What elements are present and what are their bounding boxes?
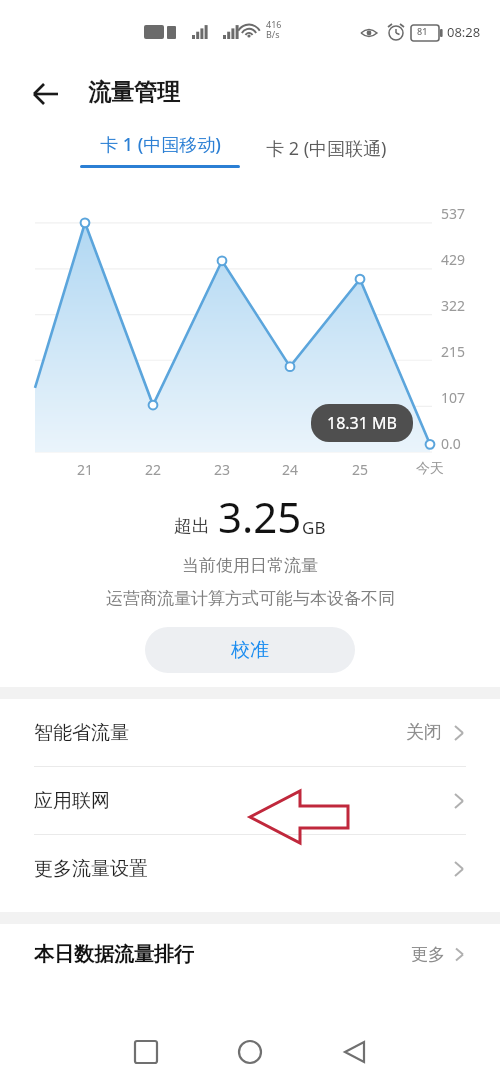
staticText: 08:28 bbox=[447, 23, 481, 41]
button[interactable]: 返回 bbox=[24, 72, 68, 116]
staticText: 107 bbox=[441, 388, 466, 407]
staticText: 本日数据流量排行 bbox=[34, 942, 194, 967]
button[interactable]: 校准 bbox=[145, 627, 355, 673]
staticText: 运营商流量计算方式可能与本设备不同 bbox=[106, 588, 395, 609]
staticText: 关闭 bbox=[406, 721, 442, 744]
staticText: 416 bbox=[266, 18, 282, 30]
button[interactable]: 返回 bbox=[327, 1020, 383, 1084]
staticText: 21 bbox=[61, 460, 109, 479]
staticText: 校准 bbox=[231, 638, 269, 662]
staticText: 更多流量设置 bbox=[34, 857, 148, 881]
staticText: 应用联网 bbox=[34, 789, 110, 813]
staticText: 流量管理 bbox=[88, 78, 180, 107]
staticText: 超出 bbox=[174, 515, 210, 538]
staticText: 当前使用日常流量 bbox=[182, 555, 318, 576]
staticText: 23 bbox=[198, 460, 246, 479]
staticText: GB bbox=[302, 516, 326, 539]
staticText: 0.0 bbox=[441, 434, 461, 453]
staticText: 卡 2 (中国联通) bbox=[266, 136, 387, 161]
button[interactable]: 本日数据流量排行 bbox=[0, 924, 500, 984]
button[interactable]: 智能省流量 bbox=[0, 699, 500, 766]
staticText: 322 bbox=[441, 296, 466, 315]
staticText: 今天 bbox=[406, 460, 454, 478]
button[interactable]: 主页 bbox=[222, 1020, 278, 1084]
button[interactable]: 卡 1 (中国移动) bbox=[80, 132, 240, 182]
staticText: 81 bbox=[417, 25, 428, 37]
staticText: 24 bbox=[266, 460, 314, 479]
staticText: 22 bbox=[129, 460, 177, 479]
staticText: B/s bbox=[266, 28, 280, 40]
button[interactable]: 最近任务 bbox=[118, 1020, 174, 1084]
staticText: 3.25 bbox=[218, 488, 302, 545]
staticText: 更多 bbox=[411, 944, 445, 965]
staticText: 537 bbox=[441, 204, 466, 223]
staticText: 215 bbox=[441, 342, 466, 361]
staticText: 18.31 MB bbox=[327, 412, 397, 434]
button[interactable]: 应用联网 bbox=[0, 767, 500, 834]
staticText: 429 bbox=[441, 250, 466, 269]
staticText: 25 bbox=[336, 460, 384, 479]
staticText: 卡 1 (中国移动) bbox=[100, 132, 221, 157]
button[interactable]: 卡 2 (中国联通) bbox=[260, 134, 393, 163]
button[interactable]: 更多流量设置 bbox=[0, 835, 500, 902]
staticText: 智能省流量 bbox=[34, 721, 129, 745]
